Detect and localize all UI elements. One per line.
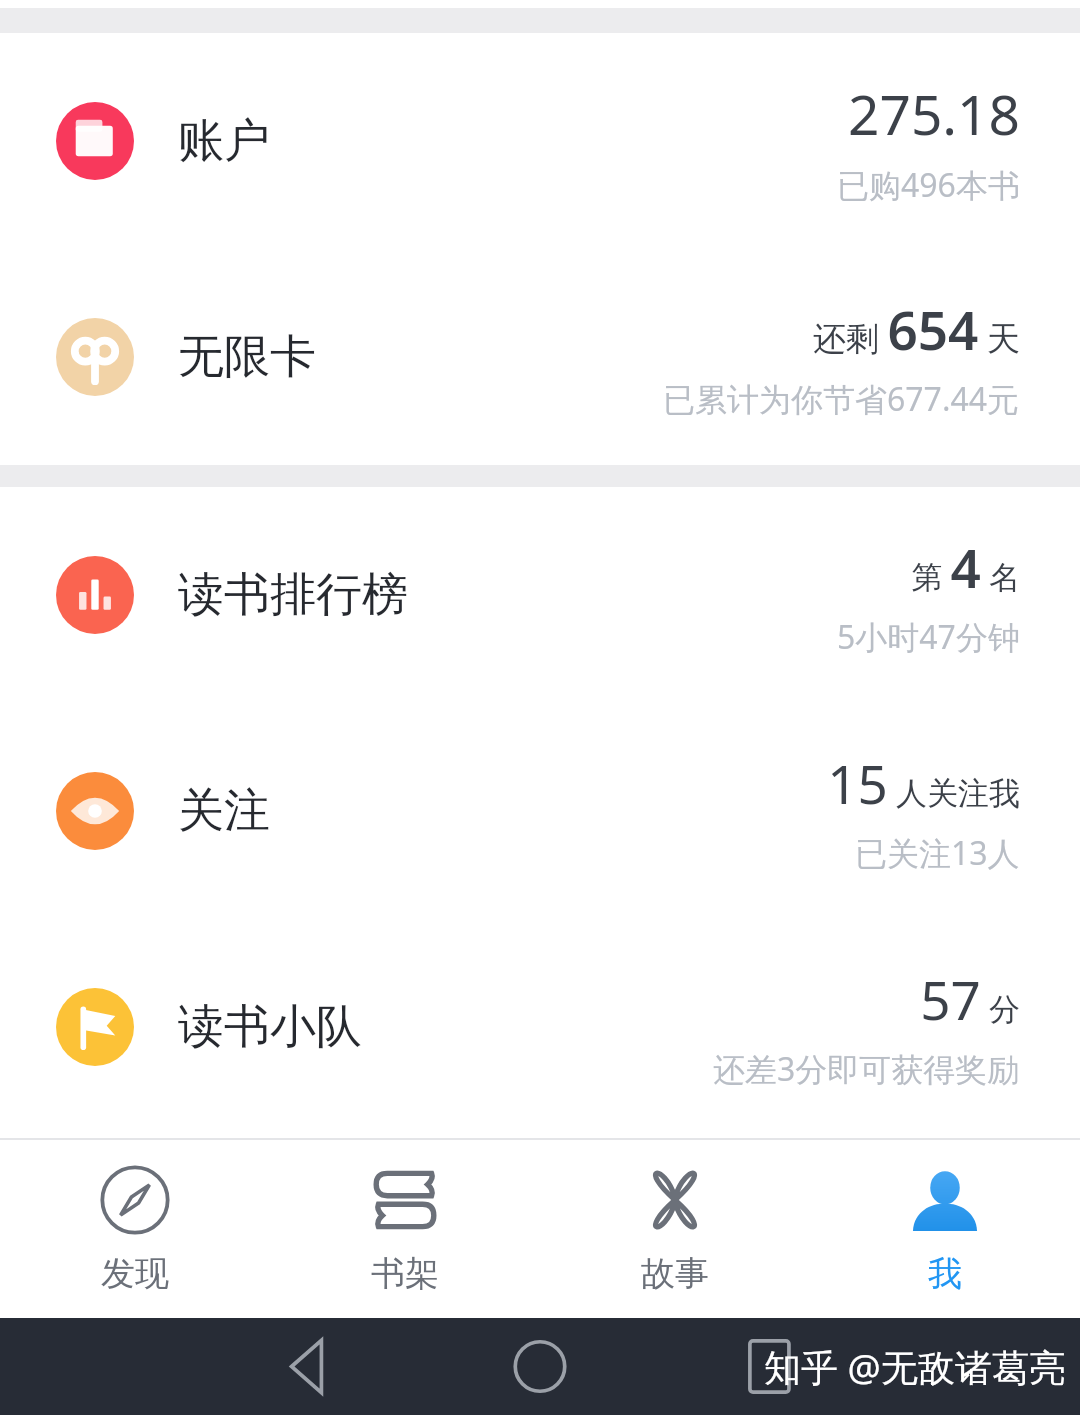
button[interactable]: 发现 xyxy=(0,1140,270,1318)
staticText: 第 4 名 xyxy=(911,531,1020,603)
staticText: 读书排行榜 xyxy=(178,566,408,624)
button[interactable]: 无限卡 xyxy=(0,249,1080,465)
staticText: 无限卡 xyxy=(178,328,316,386)
staticText: 发现 xyxy=(101,1252,169,1295)
staticText: 已累计为你节省677.44元 xyxy=(663,377,1020,421)
staticText: 书架 xyxy=(371,1252,439,1295)
staticText: 关注 xyxy=(178,782,270,840)
button[interactable]: 读书小队 xyxy=(0,919,1080,1135)
button[interactable]: 账户 xyxy=(0,33,1080,249)
staticText: 275.18 xyxy=(847,76,1020,151)
staticText: 已关注13人 xyxy=(855,831,1020,875)
staticText: 57 分 xyxy=(920,963,1020,1035)
staticText: 已购496本书 xyxy=(837,163,1020,207)
staticText: 我 xyxy=(928,1252,962,1295)
button[interactable]: 读书排行榜 xyxy=(0,487,1080,703)
staticText: 故事 xyxy=(641,1252,709,1295)
staticText: 15 人关注我 xyxy=(827,747,1020,819)
staticText: 读书小队 xyxy=(178,998,362,1056)
staticText: 知乎 @无敌诸葛亮 xyxy=(764,1341,1066,1392)
staticText: 账户 xyxy=(178,112,270,170)
staticText: 还剩 654 天 xyxy=(812,293,1020,365)
button[interactable]: 故事 xyxy=(540,1140,810,1318)
button[interactable]: 关注 xyxy=(0,703,1080,919)
staticText: 5小时47分钟 xyxy=(837,615,1020,659)
staticText: 还差3分即可获得奖励 xyxy=(713,1047,1020,1091)
button[interactable]: 我 xyxy=(810,1140,1080,1318)
button[interactable]: 书架 xyxy=(270,1140,540,1318)
